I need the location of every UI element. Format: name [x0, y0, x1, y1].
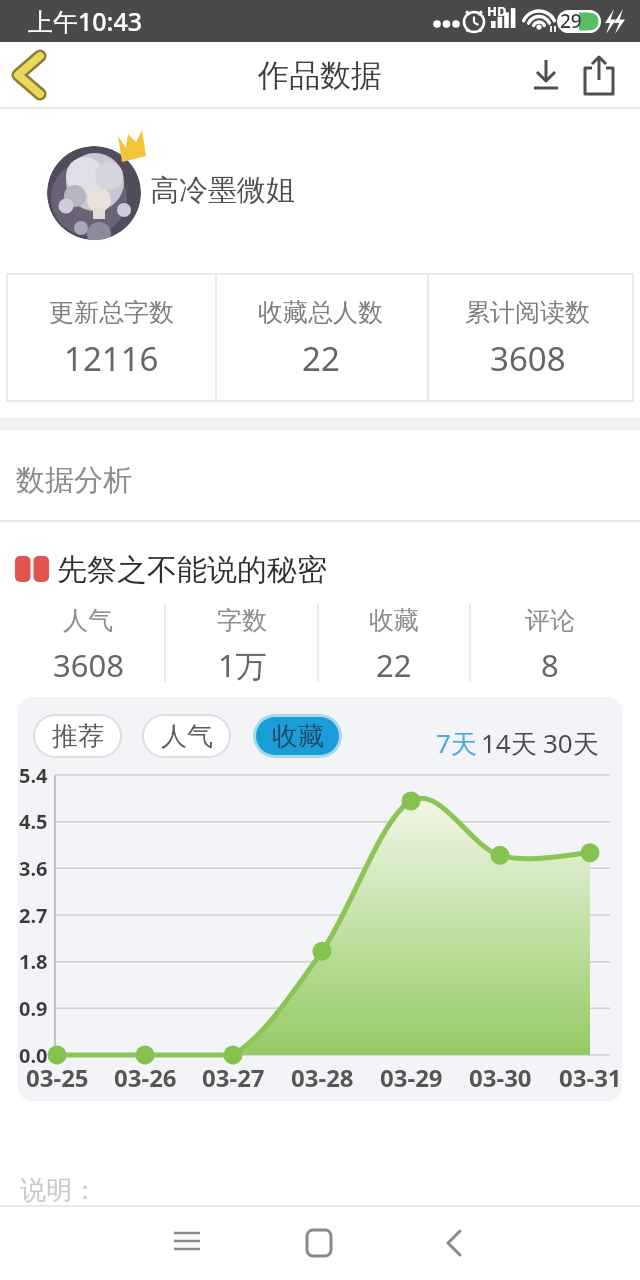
staticText: 22: [376, 644, 412, 684]
staticText: 高冷墨微姐: [150, 172, 295, 209]
staticText: 3608: [490, 336, 566, 378]
staticText: 上午10:43: [28, 4, 143, 38]
staticText: 5.4: [19, 762, 48, 789]
staticText: 3.6: [19, 855, 48, 882]
button[interactable]: 推荐: [35, 716, 120, 756]
staticText: 7天: [436, 725, 477, 759]
button[interactable]: 累计阅读数: [425, 274, 630, 401]
staticText: 推荐: [52, 720, 104, 753]
staticText: 8: [541, 644, 559, 684]
staticText: 29: [560, 8, 582, 34]
button[interactable]: [6, 50, 58, 100]
staticText: 0.9: [19, 995, 48, 1022]
staticText: 03-31: [559, 1061, 622, 1089]
staticText: 作品数据: [258, 56, 382, 95]
button[interactable]: 收藏总人数: [216, 274, 425, 401]
button[interactable]: 7天: [434, 725, 478, 759]
staticText: 4.5: [19, 808, 48, 835]
staticText: 03-26: [114, 1061, 177, 1089]
staticText: 1万: [218, 644, 267, 684]
staticText: 更新总字数: [49, 297, 174, 328]
staticText: 数据分析: [16, 462, 132, 499]
staticText: 30天: [543, 725, 599, 759]
button[interactable]: 30天: [540, 725, 602, 759]
staticText: 03-30: [469, 1061, 532, 1089]
staticText: 人气: [63, 605, 113, 636]
button[interactable]: [295, 1219, 343, 1267]
button[interactable]: 人气: [12, 600, 164, 686]
button[interactable]: 人气: [144, 716, 229, 756]
button[interactable]: 收藏: [318, 600, 470, 686]
staticText: 说明：: [20, 1174, 98, 1207]
button[interactable]: 更新总字数: [7, 274, 216, 401]
button[interactable]: 14天: [478, 725, 540, 759]
staticText: 03-28: [291, 1061, 354, 1089]
staticText: 22: [302, 336, 340, 378]
staticText: 收藏总人数: [258, 297, 383, 328]
staticText: 0.0: [19, 1042, 48, 1069]
staticText: 收藏: [369, 605, 419, 636]
button[interactable]: 字数: [166, 600, 318, 686]
staticText: 2.7: [19, 902, 48, 929]
button[interactable]: [163, 1219, 211, 1267]
staticText: 字数: [217, 605, 267, 636]
staticText: 03-29: [380, 1061, 443, 1089]
button[interactable]: 收藏: [256, 717, 339, 755]
button[interactable]: [430, 1219, 478, 1267]
button[interactable]: 评论: [474, 600, 626, 686]
staticText: 累计阅读数: [465, 297, 590, 328]
staticText: 12116: [64, 336, 159, 378]
staticText: 评论: [525, 605, 575, 636]
staticText: 03-25: [26, 1061, 89, 1089]
staticText: HD: [487, 2, 507, 18]
button[interactable]: [526, 56, 566, 96]
staticText: 1.8: [19, 948, 48, 975]
staticText: 14天: [481, 725, 537, 759]
staticText: 3608: [53, 644, 124, 684]
button[interactable]: 先祭之不能说的秘密: [0, 538, 640, 602]
button[interactable]: [578, 54, 620, 98]
staticText: 收藏: [272, 720, 324, 753]
staticText: 先祭之不能说的秘密: [57, 551, 327, 589]
staticText: 03-27: [202, 1061, 265, 1089]
staticText: 人气: [161, 720, 213, 753]
